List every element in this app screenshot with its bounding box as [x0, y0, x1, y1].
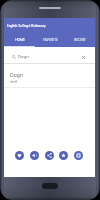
- staticText: Dogri: [18, 54, 29, 60]
- button[interactable]: Share: [45, 151, 54, 160]
- staticText: English To Dogri Dictionary: [7, 24, 46, 28]
- button[interactable]: HOME: [4, 35, 35, 47]
- button[interactable]: FAVORITE: [35, 35, 65, 47]
- button[interactable]: Star: [59, 151, 68, 160]
- staticText: डोगरी: [10, 79, 18, 84]
- button[interactable]: Home: [42, 183, 58, 189]
- button[interactable]: Dogri: [4, 64, 95, 87]
- button[interactable]: English To Dogri Dictionary: [4, 18, 95, 35]
- staticText: FAVORITE: [43, 38, 58, 42]
- staticText: RECENT: [74, 38, 86, 42]
- button[interactable]: Speak: [30, 151, 39, 160]
- staticText: Dogri: [10, 72, 24, 79]
- button[interactable]: RECENT: [65, 35, 95, 47]
- button[interactable]: Favorite: [15, 151, 24, 160]
- staticText: HOME: [15, 38, 25, 42]
- button[interactable]: Keyboard: [74, 151, 83, 160]
- button[interactable]: Clear: [81, 55, 86, 60]
- button[interactable]: Dogri: [4, 47, 95, 63]
